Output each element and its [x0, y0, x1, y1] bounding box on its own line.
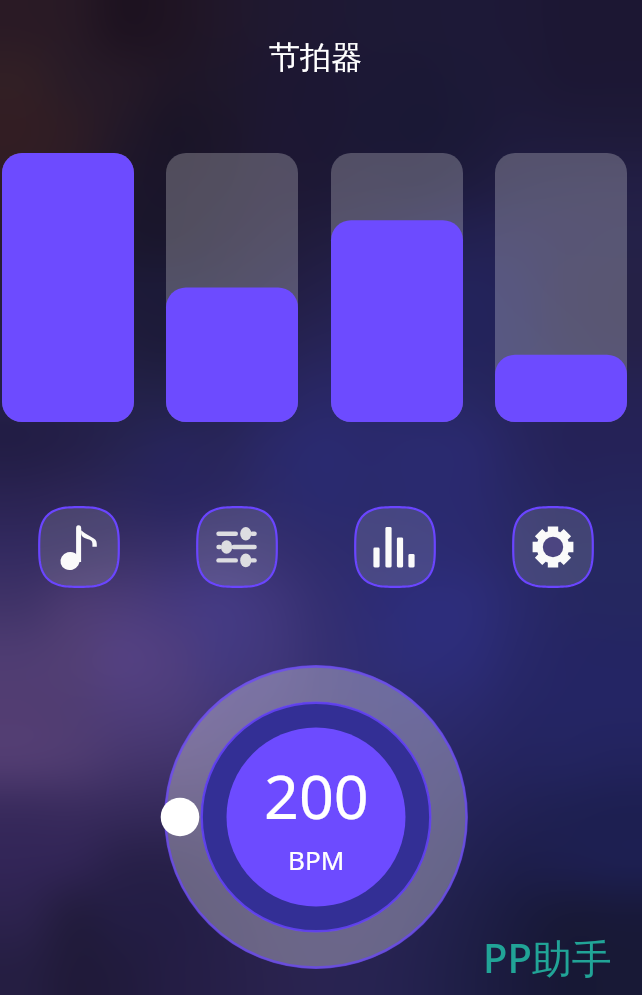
- button[interactable]: Tempo dial: [164, 665, 468, 969]
- button[interactable]: [166, 153, 298, 422]
- button[interactable]: Tune: [196, 506, 278, 588]
- button[interactable]: Beats: [354, 506, 436, 588]
- button[interactable]: [331, 153, 463, 422]
- staticText: 200: [264, 754, 369, 837]
- button[interactable]: Settings: [512, 506, 594, 588]
- staticText: BPM: [288, 842, 345, 877]
- staticText: 节拍器: [269, 38, 362, 77]
- button[interactable]: [495, 153, 627, 422]
- button[interactable]: [2, 153, 134, 422]
- button[interactable]: Sound: [38, 506, 120, 588]
- staticText: PP助手: [483, 930, 612, 985]
